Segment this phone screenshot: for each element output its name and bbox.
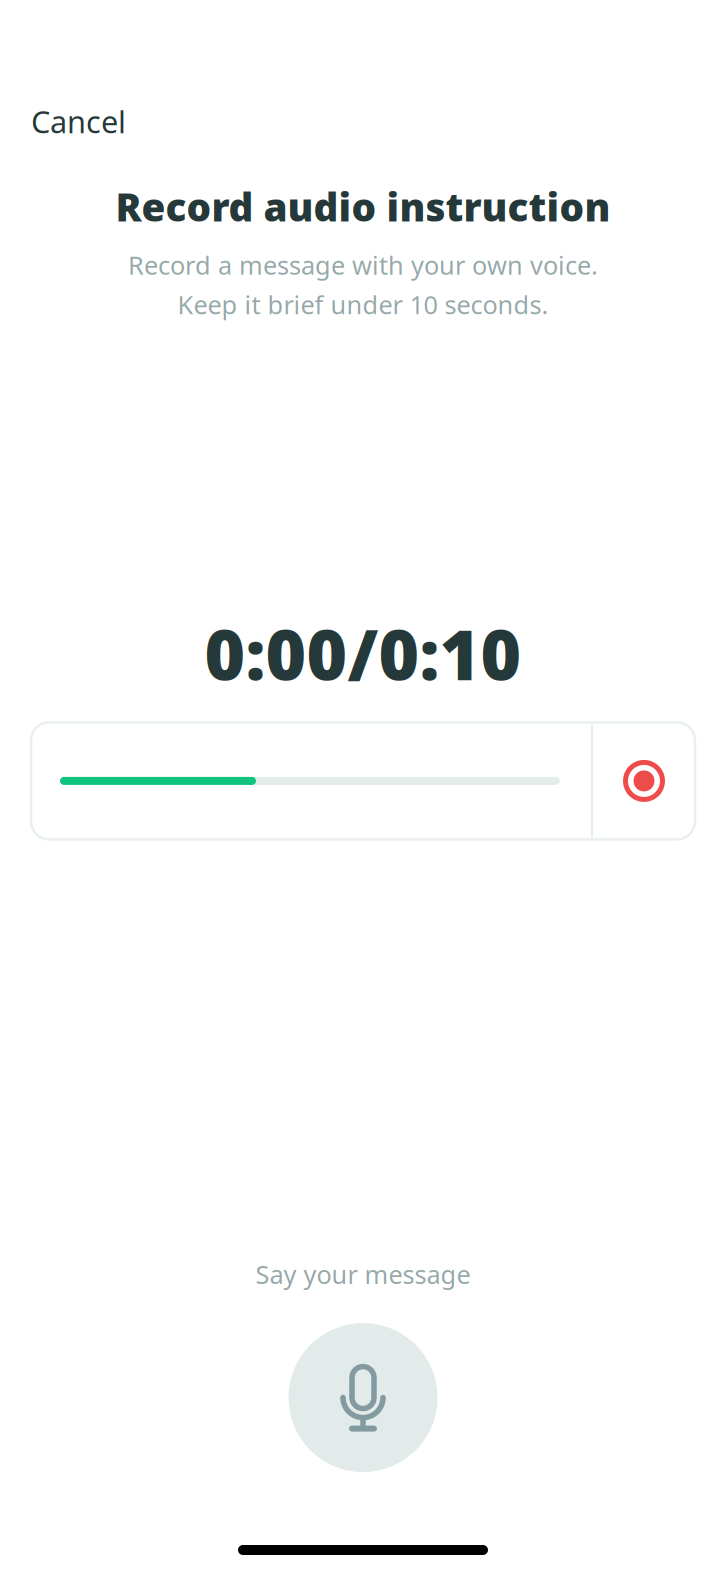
- staticText: Record a message with your own voice.: [128, 248, 598, 282]
- staticText: Keep it brief under 10 seconds.: [177, 288, 548, 321]
- button[interactable]: Record: [593, 722, 695, 839]
- staticText: Record audio instruction: [115, 181, 610, 232]
- button[interactable]: Microphone: [288, 1323, 437, 1472]
- staticText: Say your message: [255, 1257, 470, 1291]
- staticText: 0:00/0:10: [204, 607, 521, 699]
- button[interactable]: Cancel: [0, 91, 157, 152]
- staticText: Cancel: [31, 101, 126, 142]
